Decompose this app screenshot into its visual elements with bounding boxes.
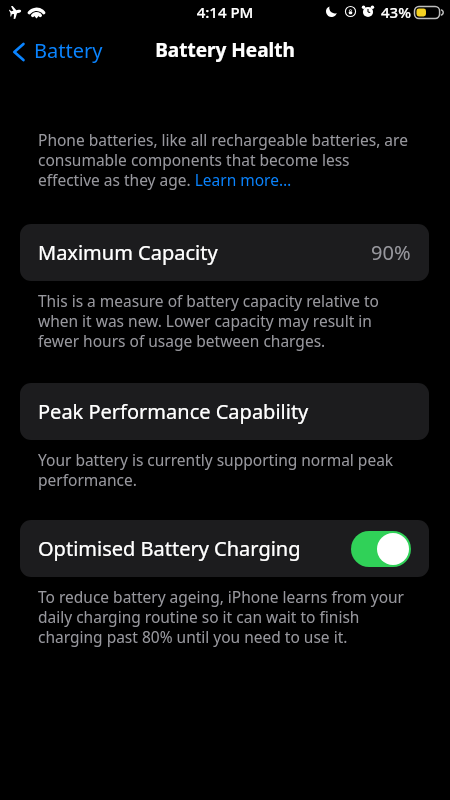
staticText: 90% — [371, 239, 411, 266]
button[interactable]: Battery — [6, 33, 109, 68]
staticText: Your battery is currently supporting nor… — [38, 449, 414, 491]
staticText: To reduce battery ageing, iPhone learns … — [38, 586, 414, 648]
button[interactable]: Optimised Battery Charging — [20, 520, 429, 577]
staticText: 4:14 PM — [0, 2, 450, 22]
staticText: Optimised Battery Charging — [38, 535, 301, 562]
staticText: Peak Performance Capability — [38, 398, 309, 425]
button[interactable]: Optimised Battery Charging — [351, 531, 411, 567]
staticText: Maximum Capacity — [38, 239, 218, 266]
staticText: Battery — [34, 37, 103, 64]
button[interactable]: Peak Performance Capability — [20, 383, 429, 440]
button[interactable]: Learn more — [196, 172, 296, 191]
staticText: This is a measure of battery capacity re… — [38, 290, 414, 352]
staticText: Battery Health — [0, 37, 450, 63]
button[interactable]: Maximum Capacity — [20, 224, 429, 281]
staticText: Phone batteries, like all rechargeable b… — [38, 129, 414, 191]
staticText: 43% — [381, 2, 411, 22]
